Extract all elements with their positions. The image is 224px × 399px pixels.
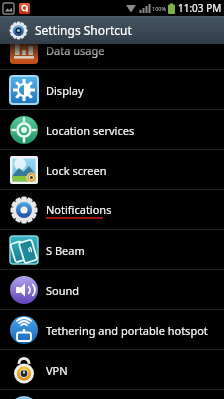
staticText: Settings Shortcut: [35, 22, 132, 38]
staticText: VPN: [46, 363, 68, 378]
button[interactable]: S Beam: [0, 230, 224, 270]
button[interactable]: Tethering and portable hotspot: [0, 310, 224, 350]
button[interactable]: Display: [0, 70, 224, 110]
button[interactable]: Notifications: [0, 190, 224, 230]
staticText: 11:03 PM: [178, 1, 222, 15]
staticText: Lock screen: [46, 163, 107, 178]
button[interactable]: Sound: [0, 270, 224, 310]
button[interactable]: Data usage: [0, 30, 224, 70]
staticText: Notifications: [46, 202, 112, 217]
staticText: Location services: [46, 123, 135, 138]
button[interactable]: [0, 390, 224, 399]
button[interactable]: Settings Shortcut: [0, 16, 224, 44]
staticText: Tethering and portable hotspot: [46, 323, 208, 338]
staticText: 100%: [152, 5, 167, 12]
staticText: Display: [46, 83, 84, 98]
staticText: Data usage: [46, 43, 105, 58]
button[interactable]: VPN: [0, 350, 224, 390]
button[interactable]: Location services: [0, 110, 224, 150]
button[interactable]: Lock screen: [0, 150, 224, 190]
staticText: Sound: [46, 283, 80, 298]
staticText: S Beam: [46, 243, 85, 258]
